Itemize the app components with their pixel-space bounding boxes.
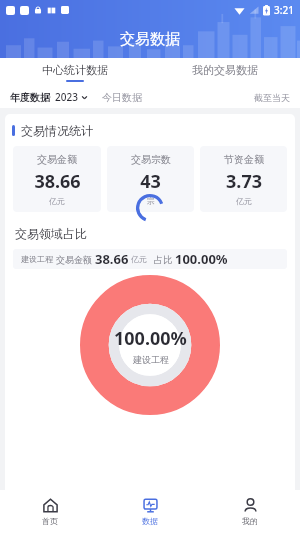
staticText: 交易金额 bbox=[37, 153, 77, 166]
button[interactable]: 首页 bbox=[0, 490, 100, 534]
button[interactable]: 2023 bbox=[55, 90, 88, 104]
staticText: 建设工程 bbox=[133, 354, 169, 365]
staticText: 43 bbox=[140, 169, 161, 194]
staticText: 100.00% bbox=[175, 250, 228, 268]
staticText: 3:21 bbox=[274, 3, 294, 17]
staticText: 我的 bbox=[242, 516, 258, 526]
staticText: 2023 bbox=[55, 90, 78, 104]
staticText: 38.66 bbox=[34, 169, 81, 194]
staticText: 交易宗数 bbox=[131, 153, 171, 166]
button[interactable]: 节资金额 bbox=[200, 146, 287, 212]
button[interactable]: 交易金额 bbox=[13, 146, 101, 212]
staticText: 38.66 bbox=[95, 250, 129, 268]
staticText: 占比 bbox=[154, 254, 172, 265]
staticText: 我的交易数据 bbox=[192, 63, 258, 77]
button[interactable]: 交易宗数 bbox=[107, 146, 194, 212]
staticText: 年度数据 bbox=[10, 91, 50, 104]
button[interactable]: 我的 bbox=[200, 490, 300, 534]
staticText: 3.73 bbox=[226, 169, 262, 194]
staticText: 交易数据 bbox=[120, 30, 180, 49]
staticText: 亿元 bbox=[49, 196, 65, 206]
button[interactable]: 今日数据 bbox=[102, 91, 142, 104]
staticText: 交易领域占比 bbox=[15, 226, 87, 241]
staticText: 今日数据 bbox=[102, 91, 142, 104]
staticText: 首页 bbox=[42, 516, 58, 526]
staticText: 交易金额 bbox=[56, 254, 92, 265]
staticText: 数据 bbox=[142, 516, 158, 526]
staticText: 交易情况统计 bbox=[21, 123, 93, 138]
staticText: 亿元 bbox=[236, 196, 252, 206]
staticText: 亿元 bbox=[131, 254, 147, 264]
staticText: 中心统计数据 bbox=[42, 63, 108, 77]
staticText: 建设工程 bbox=[21, 254, 53, 264]
button[interactable]: 我的交易数据 bbox=[150, 58, 300, 86]
staticText: 100.00% bbox=[114, 326, 187, 351]
button[interactable]: 建设工程 bbox=[13, 249, 287, 269]
button[interactable]: 数据 bbox=[100, 490, 200, 534]
button[interactable]: 中心统计数据 bbox=[0, 58, 150, 86]
staticText: 节资金额 bbox=[224, 153, 264, 166]
staticText: 宗 bbox=[147, 196, 155, 206]
staticText: 截至当天 bbox=[254, 92, 290, 103]
